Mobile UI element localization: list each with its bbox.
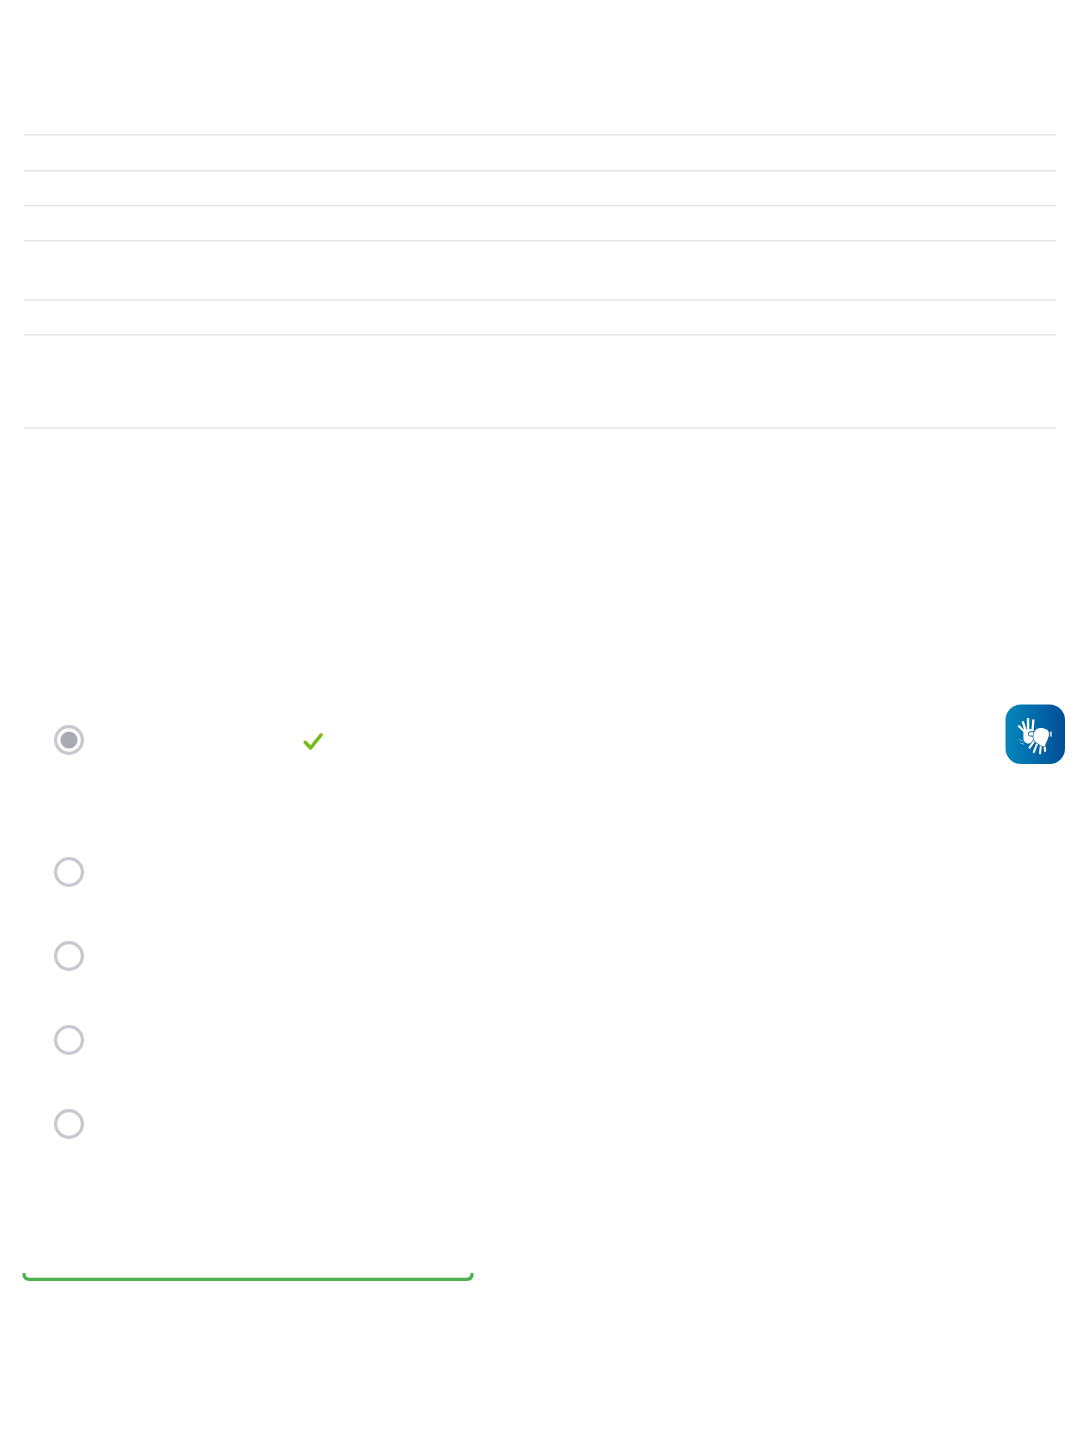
button[interactable]: Table row 5 — [24, 299, 1056, 334]
button[interactable]: Option 5 — [24, 1090, 924, 1174]
button[interactable]: Option 4 — [24, 1006, 924, 1090]
button[interactable]: Option 1 — [24, 700, 924, 838]
button[interactable]: Sign language interpreter — [1006, 705, 1066, 765]
button[interactable]: Table row 2 — [24, 170, 1056, 205]
button[interactable]: Table row 1 — [24, 134, 1056, 170]
button[interactable]: Answer text field — [24, 1220, 472, 1282]
button[interactable]: Table row 4 — [24, 240, 1056, 299]
button[interactable]: Option 2 — [24, 838, 924, 922]
button[interactable]: Table row 3 — [24, 205, 1056, 240]
button[interactable]: Option 3 — [24, 922, 924, 1006]
